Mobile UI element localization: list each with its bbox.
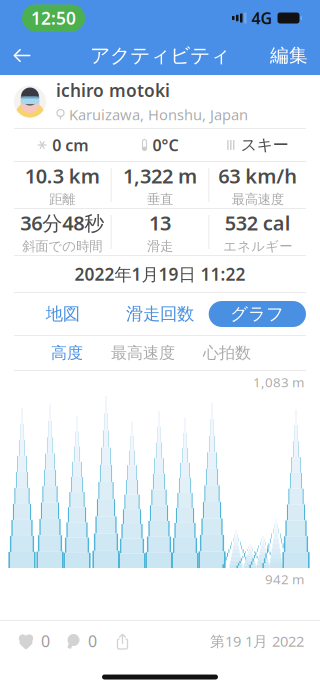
staticText: 0 bbox=[88, 630, 97, 652]
button[interactable]: ichiro motoki bbox=[0, 75, 320, 128]
button[interactable]: グラフ bbox=[209, 293, 306, 335]
staticText: スキー bbox=[241, 135, 289, 155]
staticText: Karuizawa, Honshu, Japan bbox=[69, 105, 248, 124]
staticText: 2022年1月19日 11:22 bbox=[74, 262, 245, 285]
staticText: 斜面での時間 bbox=[22, 238, 102, 254]
staticText: 10.3 km bbox=[25, 162, 100, 189]
button[interactable]: 滑走回数 bbox=[111, 293, 209, 335]
button[interactable]: 最高速度 bbox=[97, 337, 189, 369]
staticText: 0°C bbox=[152, 134, 178, 156]
staticText: 13 bbox=[149, 209, 171, 236]
staticText: グラフ bbox=[230, 303, 284, 325]
staticText: 最高速度 bbox=[232, 191, 284, 207]
staticText: ichiro motoki bbox=[56, 79, 170, 102]
button[interactable]: 編集 bbox=[258, 36, 320, 75]
button[interactable]: 高度 bbox=[37, 337, 97, 369]
staticText: 地図 bbox=[46, 303, 80, 325]
staticText: 532 cal bbox=[225, 209, 291, 236]
button[interactable]: 戻る bbox=[0, 36, 44, 75]
button[interactable]: コメント bbox=[56, 623, 107, 659]
button[interactable]: いいね bbox=[12, 623, 56, 659]
staticText: 4G bbox=[251, 7, 272, 29]
staticText: 滑走 bbox=[147, 238, 173, 254]
staticText: 0 bbox=[41, 630, 50, 652]
staticText: 距離 bbox=[49, 191, 75, 207]
staticText: エネルギー bbox=[223, 238, 292, 254]
staticText: 最高速度 bbox=[111, 343, 175, 363]
staticText: 1,083 m bbox=[253, 373, 304, 391]
staticText: 0 cm bbox=[52, 134, 88, 156]
staticText: 編集 bbox=[270, 44, 308, 67]
staticText: 垂直 bbox=[147, 191, 173, 207]
staticText: 1,322 m bbox=[123, 162, 197, 189]
staticText: 高度 bbox=[51, 343, 83, 363]
staticText: 第19 1月 2022 bbox=[210, 631, 304, 651]
staticText: 心拍数 bbox=[203, 343, 251, 363]
button[interactable]: 共有 bbox=[107, 623, 138, 659]
staticText: アクティビティ bbox=[90, 43, 230, 68]
button[interactable]: 地図 bbox=[14, 293, 111, 335]
staticText: 942 m bbox=[265, 570, 304, 588]
staticText: 63 km/h bbox=[218, 162, 297, 189]
button[interactable]: 心拍数 bbox=[189, 337, 265, 369]
staticText: 12:50 bbox=[31, 6, 76, 29]
staticText: 36分48秒 bbox=[20, 209, 104, 236]
staticText: 滑走回数 bbox=[126, 303, 194, 325]
